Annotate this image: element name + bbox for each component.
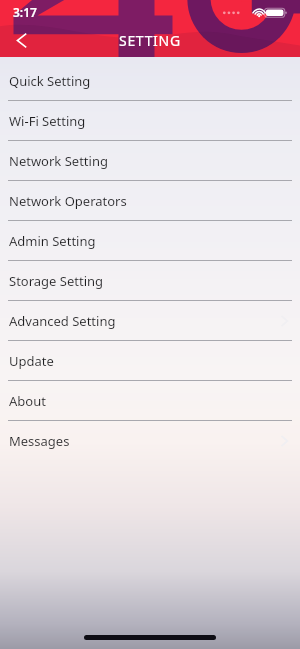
staticText: SETTING — [119, 31, 181, 50]
button[interactable]: About — [0, 381, 300, 421]
button[interactable]: Quick Setting — [0, 61, 300, 101]
button[interactable]: Messages — [0, 421, 300, 461]
button[interactable]: Network Setting — [0, 141, 300, 181]
button[interactable]: Storage Setting — [0, 261, 300, 301]
button[interactable]: Back — [0, 24, 44, 57]
staticText: Wi-Fi Setting — [9, 112, 86, 130]
staticText: 3:17 — [13, 4, 37, 20]
button[interactable]: Advanced Setting — [0, 301, 300, 341]
staticText: Network Operators — [9, 192, 127, 210]
button[interactable]: Network Operators — [0, 181, 300, 221]
staticText: Admin Setting — [9, 232, 96, 250]
button[interactable]: Admin Setting — [0, 221, 300, 261]
staticText: Storage Setting — [9, 272, 104, 290]
staticText: Network Setting — [9, 152, 108, 170]
staticText: Update — [9, 352, 54, 370]
staticText: About — [9, 392, 46, 410]
staticText: Advanced Setting — [9, 312, 116, 330]
button[interactable]: Update — [0, 341, 300, 381]
staticText: Messages — [9, 432, 70, 450]
staticText: Quick Setting — [9, 72, 91, 90]
button[interactable]: Wi-Fi Setting — [0, 101, 300, 141]
